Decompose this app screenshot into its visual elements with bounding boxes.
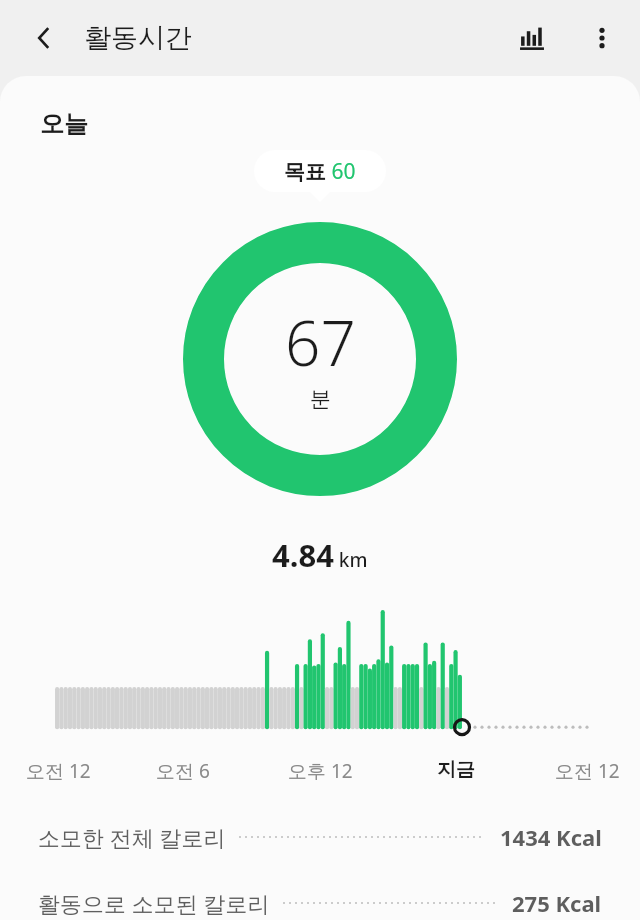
staticText: 4.84 km [272,534,368,576]
staticText: 활동으로 소모된 칼로리 [38,888,270,918]
button[interactable]: Chart [508,14,556,62]
staticText: 오전 6 [156,758,210,784]
staticText: 67 [285,300,356,384]
staticText: 활동시간 [84,21,192,55]
staticText: 분 [310,386,331,412]
staticText: 275 Kcal [512,888,602,918]
button[interactable]: Back [22,16,66,60]
staticText: 목표 60 [284,157,356,186]
staticText: 소모한 전체 칼로리 [38,822,226,852]
staticText: 오후 12 [288,758,353,784]
button[interactable]: 목표 60 [254,150,386,192]
staticText: 지금 [437,758,475,782]
staticText: 오전 12 [26,758,91,784]
staticText: 1434 Kcal [500,822,602,852]
staticText: 오전 12 [555,758,620,784]
button[interactable]: 활동으로 소모된 칼로리 [0,885,640,920]
staticText: 오늘 [40,109,88,139]
button[interactable]: 소모한 전체 칼로리 [0,816,640,858]
button[interactable]: More options [578,14,626,62]
